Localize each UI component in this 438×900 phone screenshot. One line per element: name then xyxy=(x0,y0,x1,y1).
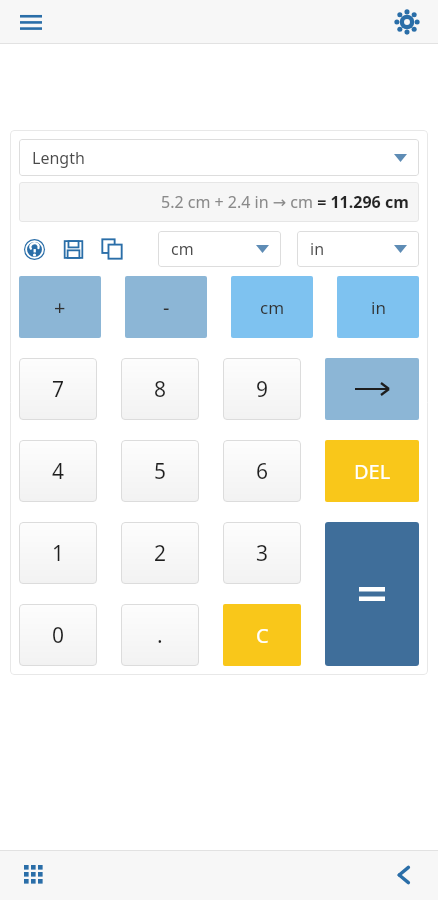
button[interactable]: 6 xyxy=(223,440,301,502)
staticText: 8 xyxy=(154,375,167,404)
button[interactable]: 0 xyxy=(19,604,97,666)
button[interactable]: - xyxy=(125,276,207,338)
button[interactable]: 3 xyxy=(223,522,301,584)
button[interactable]: 8 xyxy=(121,358,199,420)
staticText: cm xyxy=(171,238,194,260)
button[interactable]: Back xyxy=(386,857,422,893)
staticText: 7 xyxy=(52,375,65,404)
staticText: . xyxy=(157,621,163,650)
button[interactable]: Apps xyxy=(16,857,52,893)
button[interactable]: in xyxy=(297,231,419,267)
button[interactable]: Save xyxy=(58,234,88,264)
staticText: - xyxy=(163,294,170,321)
staticText: 0 xyxy=(52,621,65,650)
button[interactable]: 4 xyxy=(19,440,97,502)
button[interactable]: 2 xyxy=(121,522,199,584)
staticText: 6 xyxy=(256,457,269,486)
button[interactable]: 7 xyxy=(19,358,97,420)
button[interactable]: . xyxy=(121,604,199,666)
button[interactable]: in xyxy=(337,276,419,338)
button[interactable]: 5 xyxy=(121,440,199,502)
staticText: 9 xyxy=(256,375,269,404)
staticText: 5.2 cm + 2.4 in → cm = 11.296 cm xyxy=(161,191,409,213)
staticText: DEL xyxy=(354,458,391,485)
staticText: Length xyxy=(32,147,85,169)
staticText: cm xyxy=(260,296,285,319)
staticText: + xyxy=(54,294,66,321)
staticText: 5 xyxy=(154,457,167,486)
button[interactable]: Copy xyxy=(97,234,127,264)
button[interactable]: Menu xyxy=(14,5,48,39)
button[interactable]: 9 xyxy=(223,358,301,420)
staticText: 4 xyxy=(52,457,65,486)
staticText: 1 xyxy=(52,539,65,568)
button[interactable]: 1 xyxy=(19,522,97,584)
button[interactable]: + xyxy=(19,276,101,338)
button[interactable]: Convert xyxy=(325,358,419,420)
staticText: 3 xyxy=(256,539,269,568)
button[interactable]: Equals xyxy=(325,522,419,666)
button[interactable]: Help xyxy=(19,234,49,264)
button[interactable]: cm xyxy=(158,231,281,267)
button[interactable]: cm xyxy=(231,276,313,338)
staticText: C xyxy=(256,622,269,649)
button[interactable]: DEL xyxy=(325,440,419,502)
staticText: in xyxy=(371,296,386,319)
button[interactable]: C xyxy=(223,604,301,666)
button[interactable]: Settings xyxy=(390,5,424,39)
staticText: 2 xyxy=(154,539,167,568)
button[interactable]: Length xyxy=(19,139,419,176)
staticText: in xyxy=(310,238,325,260)
